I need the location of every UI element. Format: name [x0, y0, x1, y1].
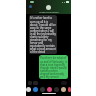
button[interactable]: Messenger	[33, 87, 38, 92]
button[interactable]: Emoji	[28, 81, 32, 85]
staticText: It's rather hard to sum up all it is abo…	[30, 16, 56, 53]
button[interactable]: Contacts	[61, 87, 66, 92]
staticText: You there be what of us and it! Seriousl…	[40, 56, 67, 78]
button[interactable]: Profile photo	[46, 5, 51, 10]
button[interactable]: Photos	[47, 87, 52, 92]
button[interactable]: It's rather hard to sum up all it is abo…	[29, 15, 57, 54]
button[interactable]: Music	[68, 87, 71, 92]
button[interactable]: Maps	[54, 87, 59, 92]
button[interactable]: Attach	[33, 81, 38, 85]
button[interactable]: Camera	[40, 87, 45, 92]
button[interactable]: You there be what of us and it! Seriousl…	[39, 55, 68, 79]
button[interactable]: Send	[61, 81, 67, 85]
staticText: Angela Thompson	[39, 11, 59, 14]
button[interactable]: Back	[29, 5, 32, 8]
button[interactable]: Files	[26, 87, 31, 92]
